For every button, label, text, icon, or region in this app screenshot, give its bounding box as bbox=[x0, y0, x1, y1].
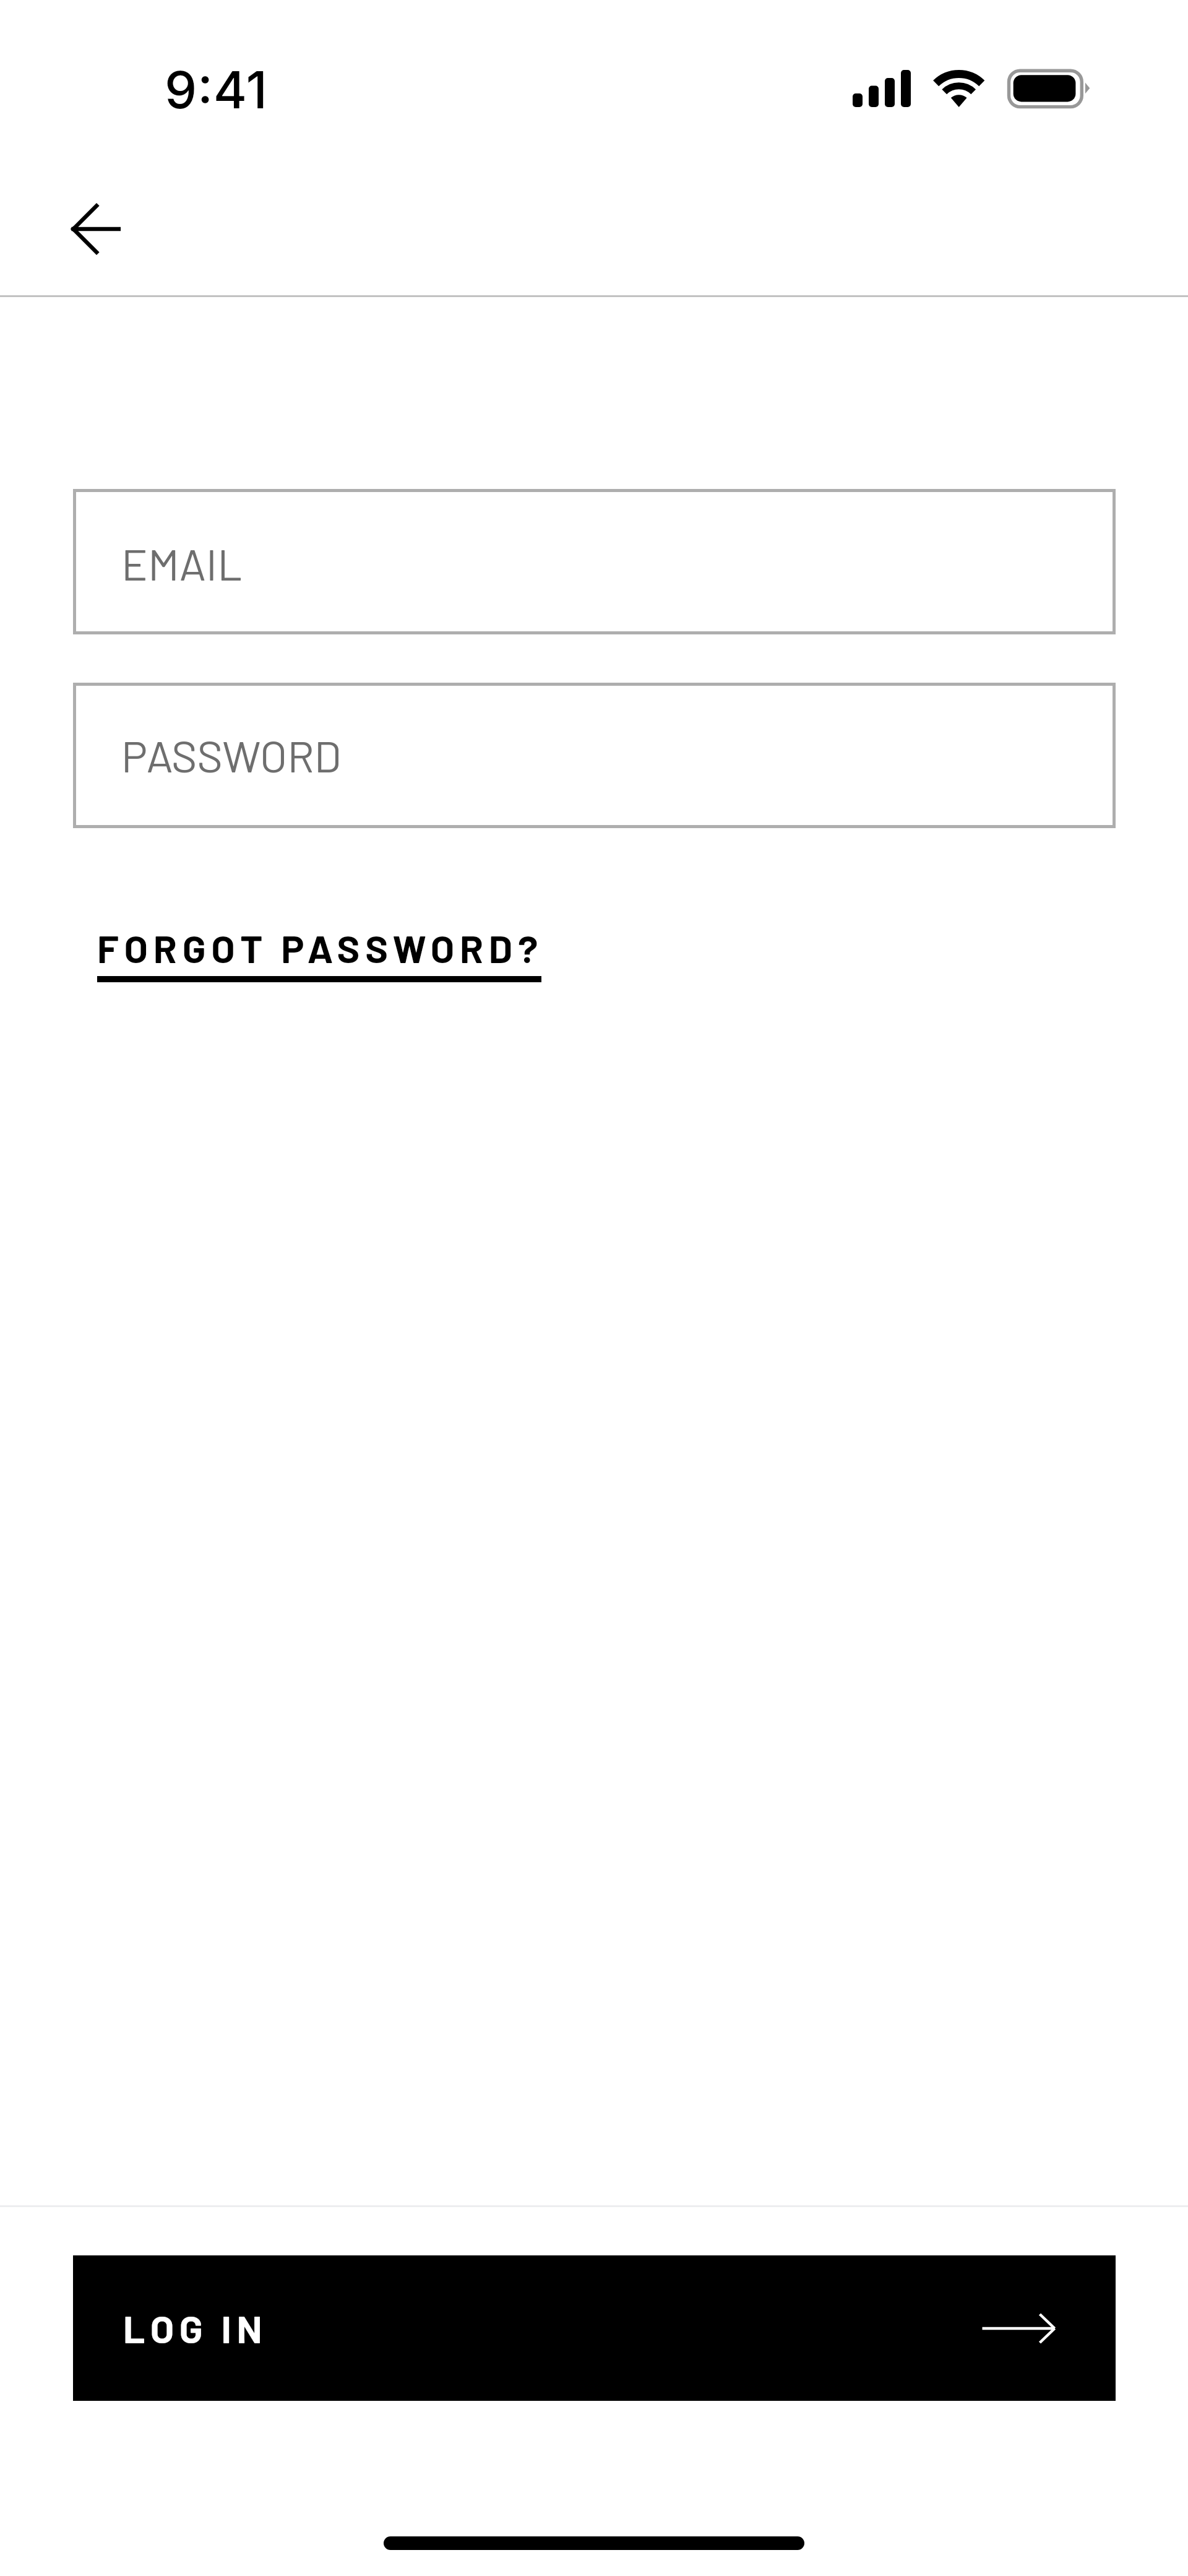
staticText: EMAIL bbox=[121, 537, 243, 589]
button[interactable]: LOG IN bbox=[73, 2255, 1116, 2401]
button[interactable]: FORGOT PASSWORD? bbox=[97, 925, 544, 977]
staticText: PASSWORD bbox=[121, 728, 342, 781]
button[interactable]: Back bbox=[33, 179, 157, 279]
button[interactable]: EMAIL bbox=[73, 489, 1116, 634]
staticText: FORGOT PASSWORD? bbox=[97, 925, 544, 970]
staticText: 9:41 bbox=[165, 59, 268, 121]
button[interactable]: PASSWORD bbox=[73, 683, 1116, 828]
staticText: LOG IN bbox=[123, 2305, 268, 2351]
